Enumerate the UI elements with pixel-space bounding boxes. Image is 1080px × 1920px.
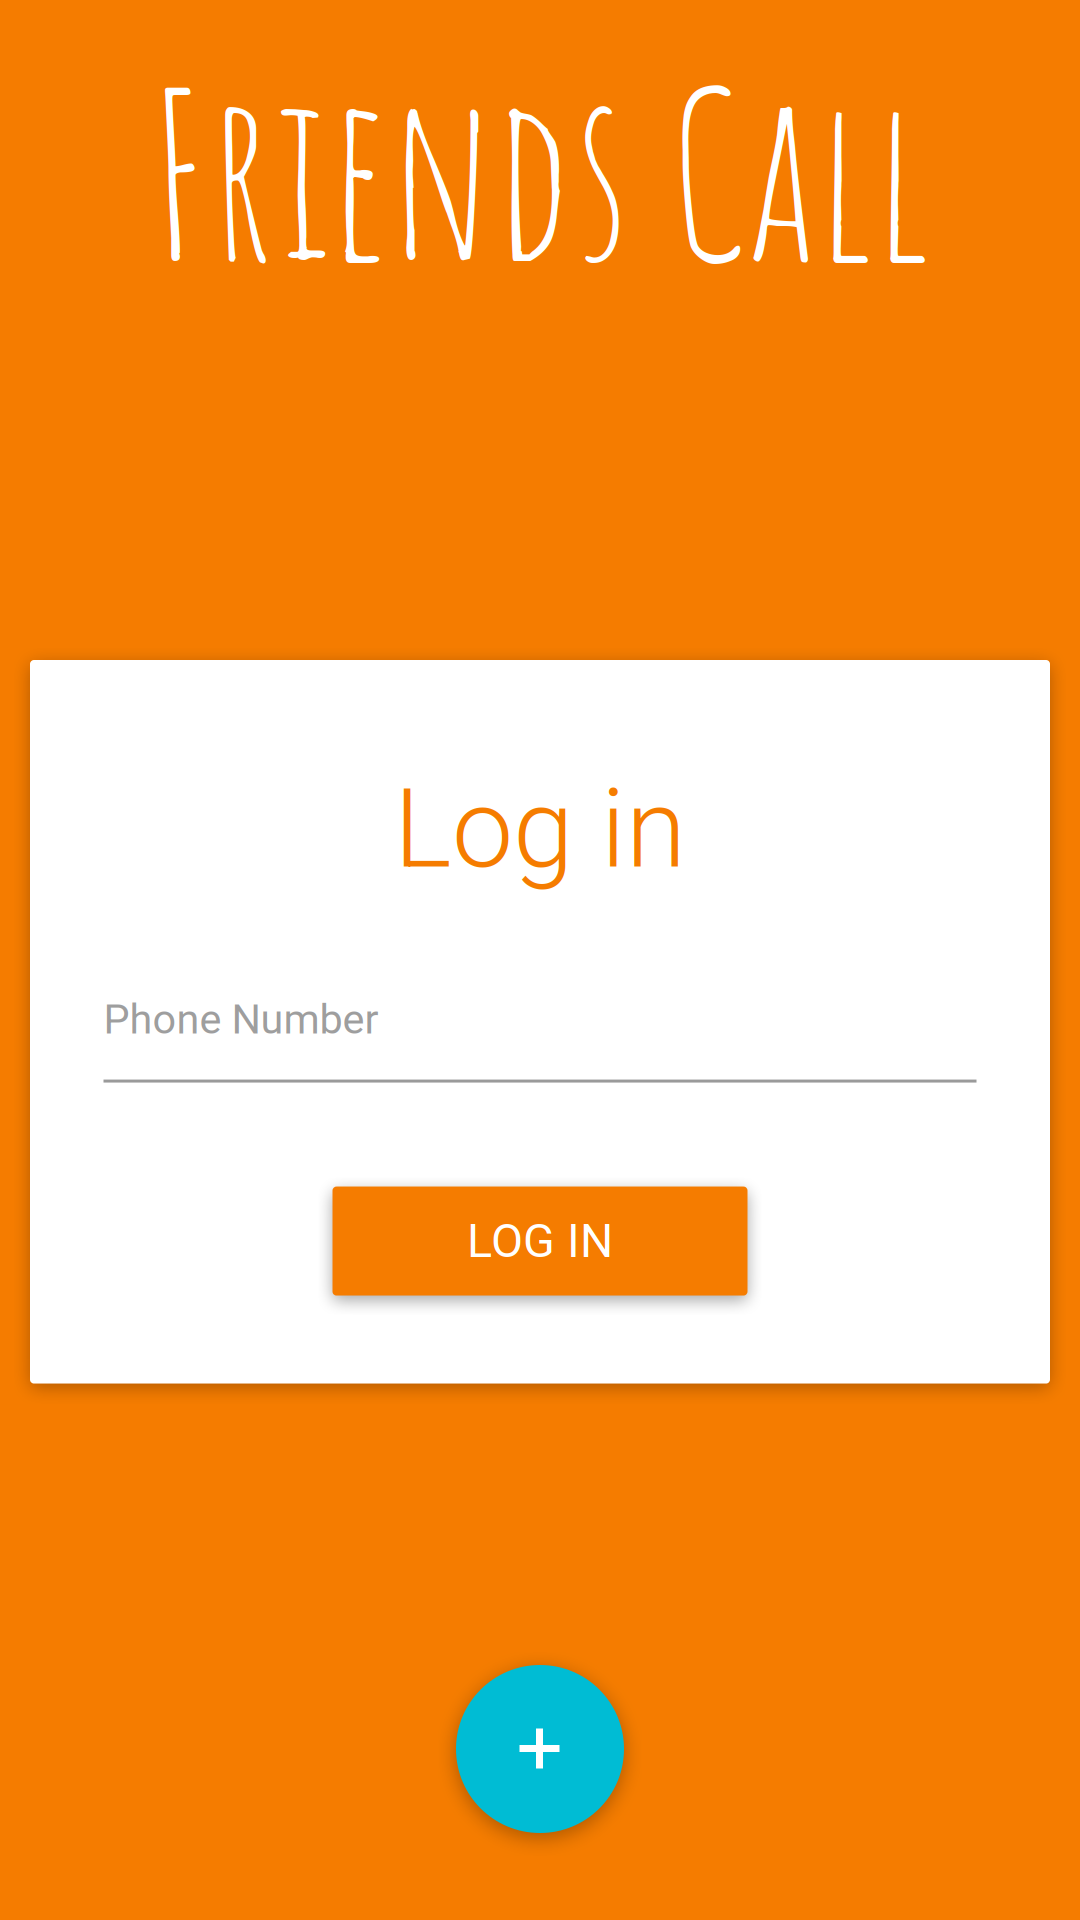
button[interactable]: LOG IN bbox=[332, 1187, 747, 1296]
button[interactable]: Phone Number bbox=[103, 995, 976, 1082]
button[interactable]: Add contact bbox=[456, 1665, 624, 1833]
staticText: Log in bbox=[394, 765, 686, 893]
staticText: Friends Call bbox=[149, 27, 930, 316]
staticText: LOG IN bbox=[467, 1214, 613, 1268]
staticText: Phone Number bbox=[103, 995, 378, 1043]
